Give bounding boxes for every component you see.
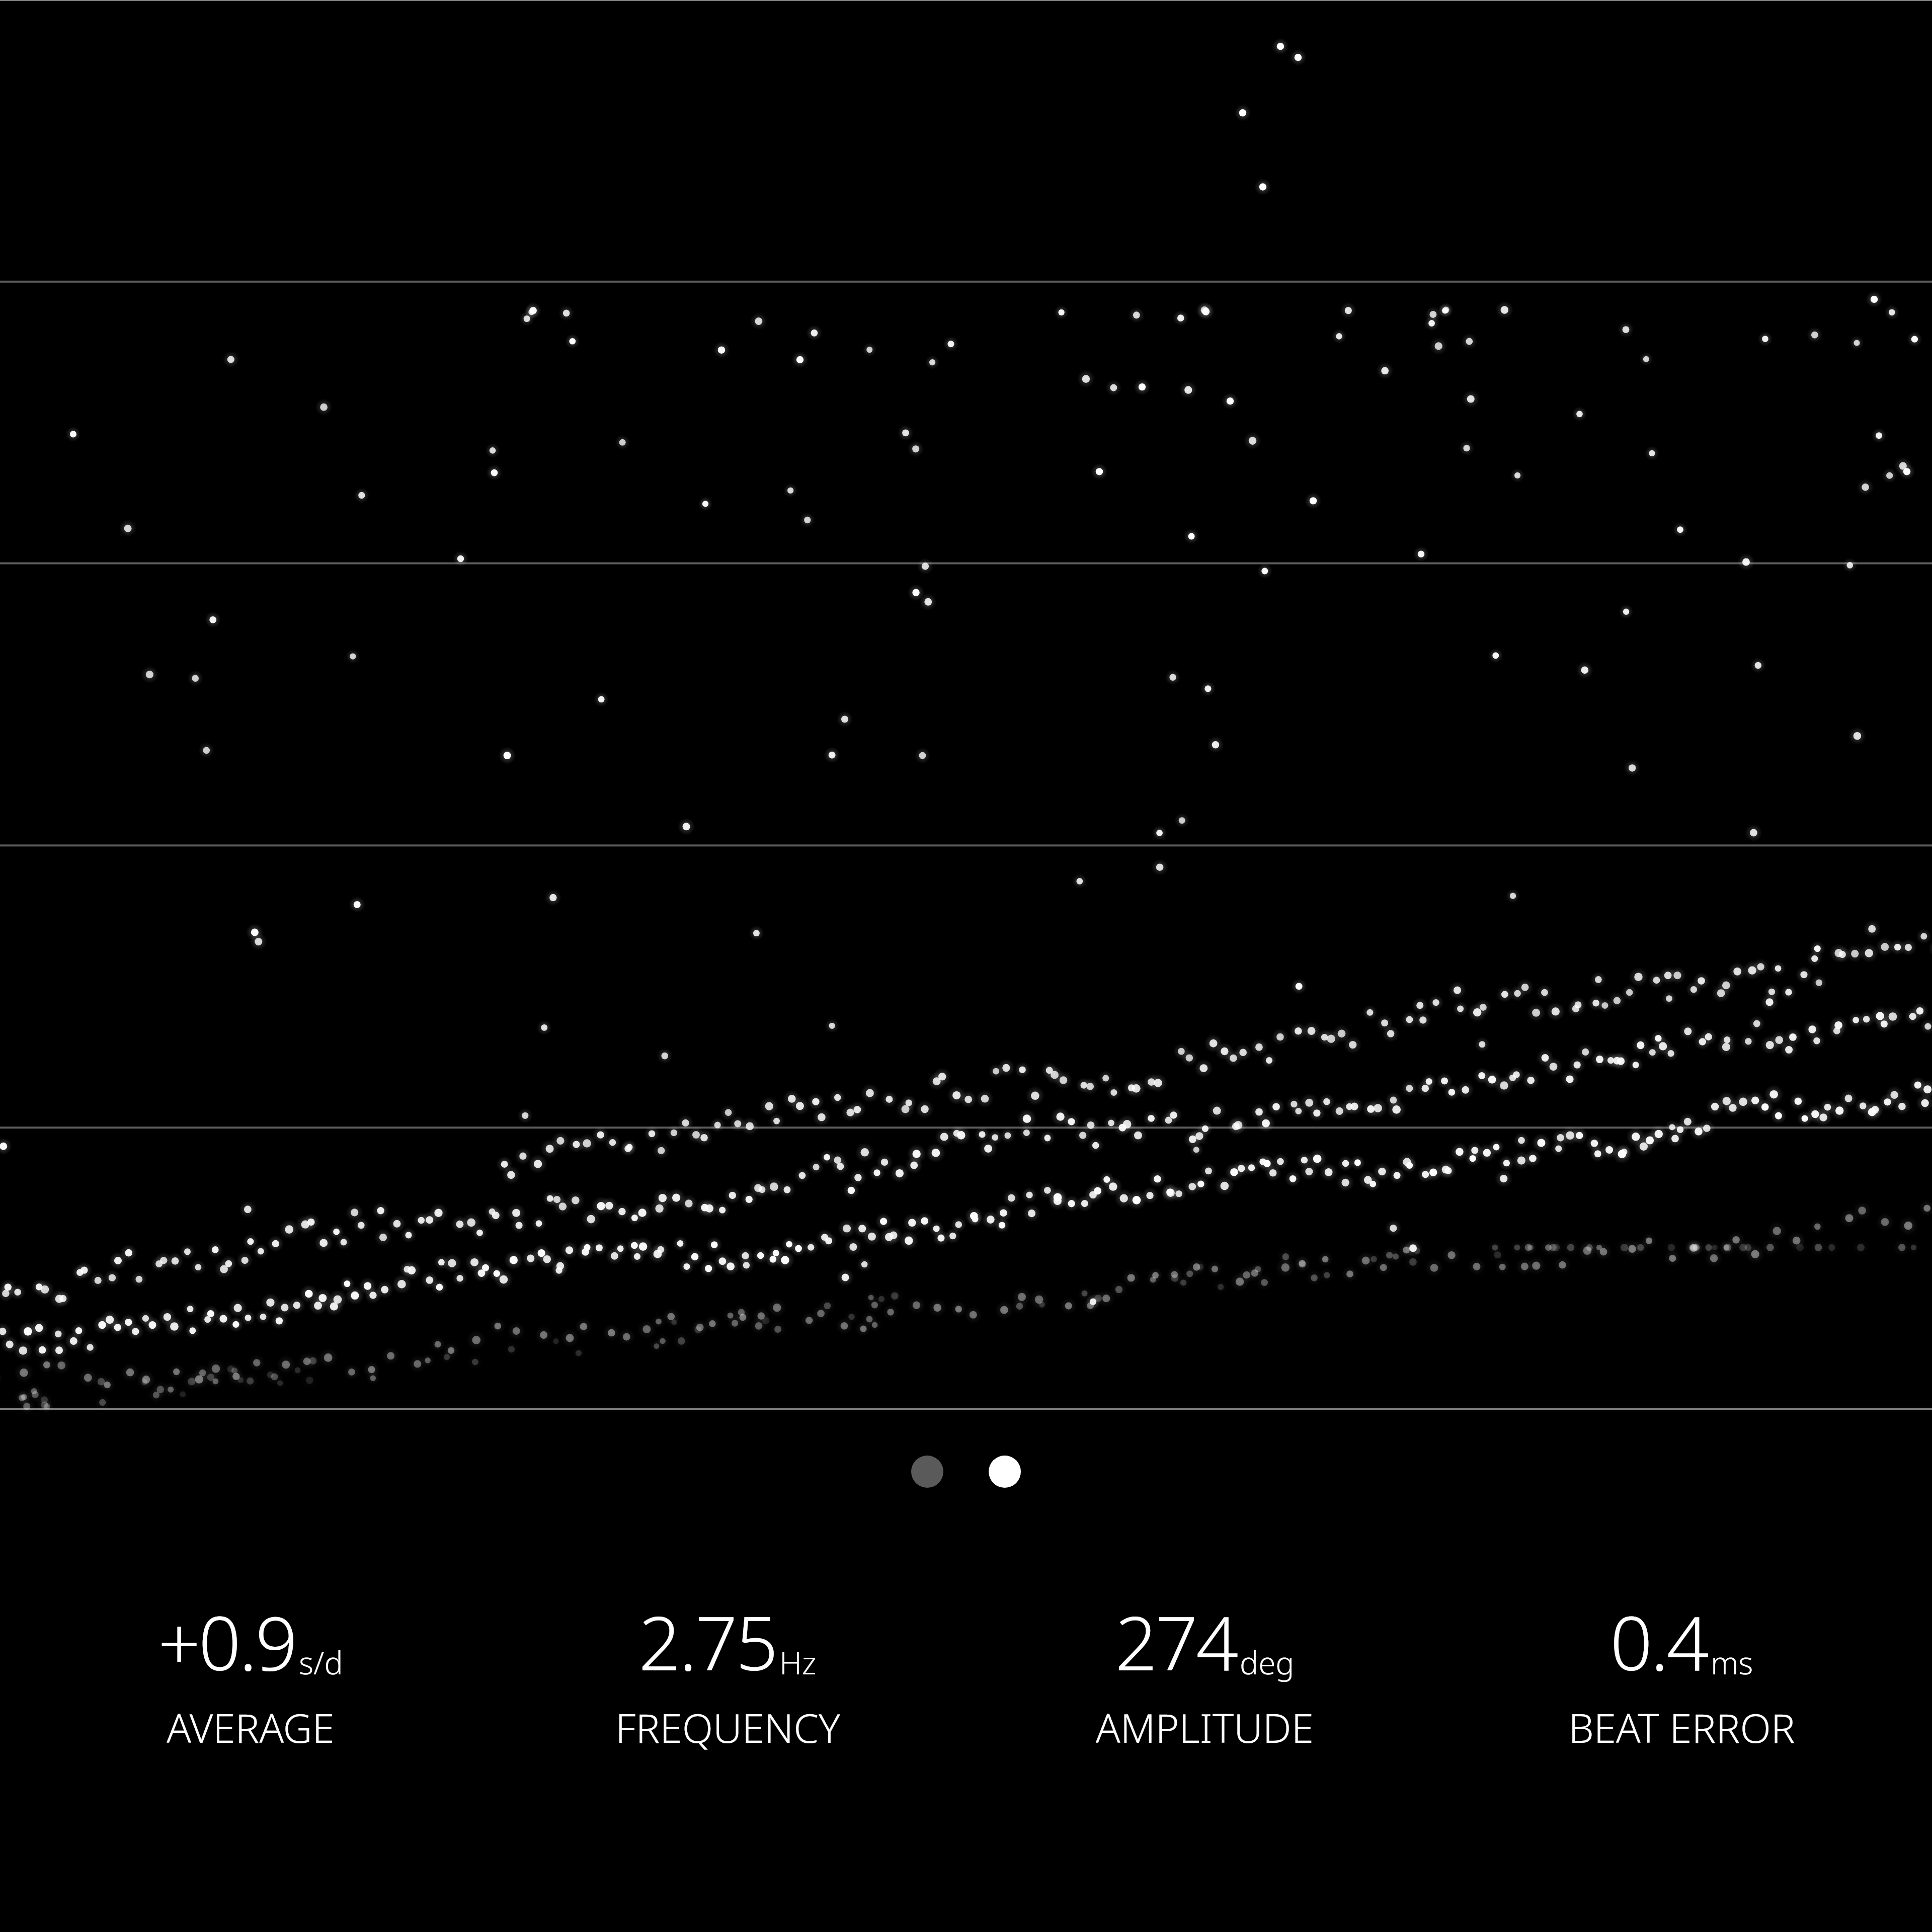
staticText: AVERAGE — [167, 1700, 335, 1754]
staticText: Hz — [779, 1641, 817, 1683]
button[interactable]: 0.4 — [1443, 1591, 1920, 1754]
staticText: 0.4 — [1610, 1591, 1708, 1693]
staticText: AMPLITUDE — [1096, 1700, 1314, 1754]
staticText: 2.75 — [638, 1591, 776, 1693]
staticText: FREQUENCY — [615, 1700, 840, 1754]
staticText: s/d — [299, 1641, 343, 1683]
staticText: ms — [1711, 1641, 1753, 1683]
button[interactable]: 274 — [966, 1591, 1443, 1754]
staticText: 274 — [1115, 1591, 1237, 1693]
staticText: BEAT ERROR — [1568, 1700, 1795, 1754]
button[interactable]: Page 2 — [989, 1456, 1021, 1488]
button[interactable]: 2.75 — [489, 1591, 966, 1754]
staticText: +0.9 — [158, 1591, 296, 1693]
button[interactable]: Rate graph — [0, 0, 1932, 1409]
button[interactable]: Page 1 — [911, 1456, 943, 1488]
button[interactable]: +0.9 — [12, 1591, 489, 1754]
staticText: deg — [1240, 1641, 1295, 1683]
